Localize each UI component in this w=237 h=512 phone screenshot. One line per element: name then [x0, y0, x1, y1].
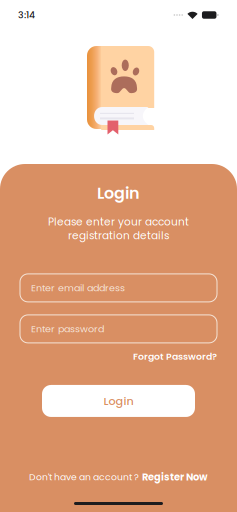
staticText: registration details: [68, 228, 169, 243]
staticText: Login: [97, 182, 140, 204]
staticText: Forgot Password?: [133, 350, 217, 363]
staticText: Enter email address: [31, 281, 125, 295]
staticText: Login: [103, 393, 133, 409]
button[interactable]: Login: [42, 385, 195, 417]
staticText: Don't have an account ?: [29, 471, 139, 484]
button[interactable]: Forgot Password?: [20, 350, 217, 363]
button[interactable]: Enter password: [20, 315, 217, 343]
button[interactable]: Don't have an account ?: [29, 470, 208, 484]
staticText: 3:14: [18, 8, 35, 22]
staticText: Enter password: [31, 322, 104, 336]
staticText: Register Now: [142, 470, 208, 484]
staticText: Please enter your account: [48, 214, 189, 229]
button[interactable]: Enter email address: [20, 274, 217, 302]
